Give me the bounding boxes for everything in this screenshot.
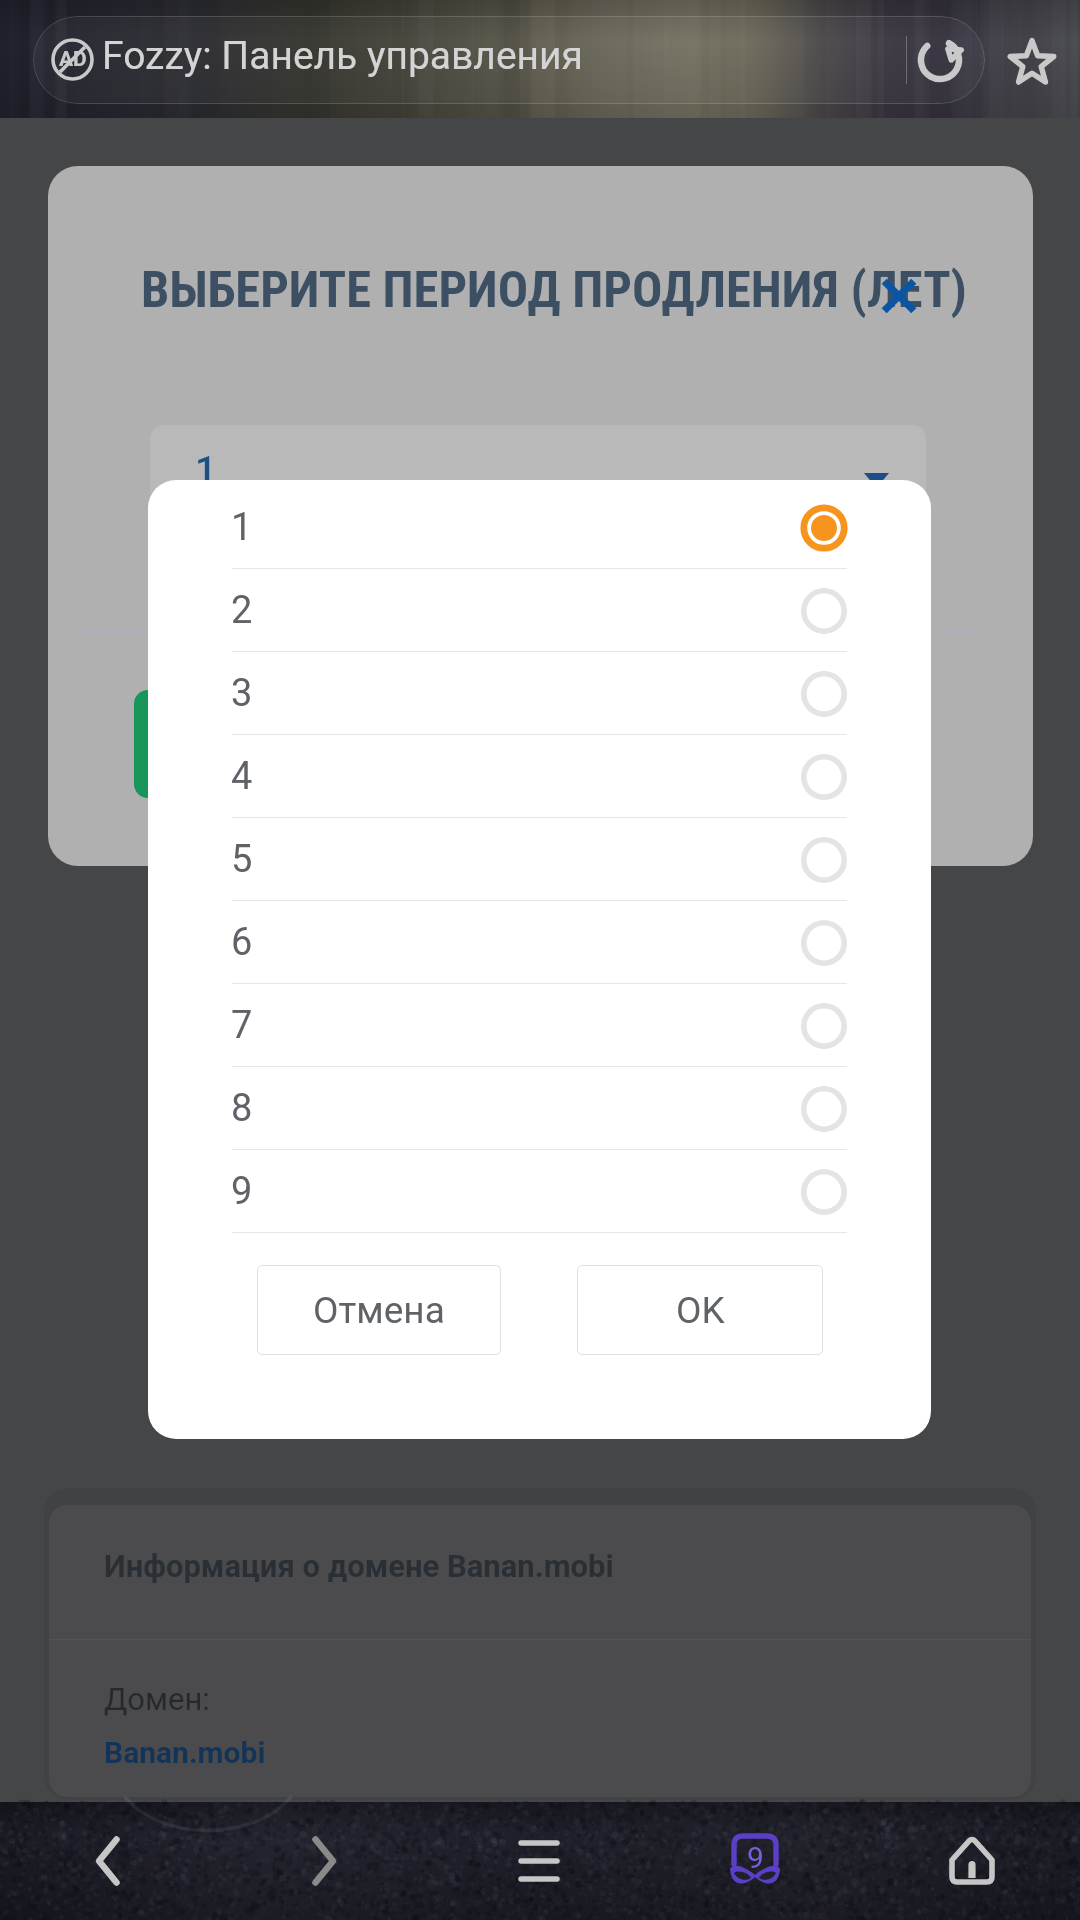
- button[interactable]: 8: [148, 1067, 931, 1150]
- button[interactable]: 6: [148, 901, 931, 984]
- button[interactable]: 1: [150, 425, 926, 535]
- button[interactable]: 4: [148, 735, 931, 818]
- staticText: Информация о домене Banan.mobi: [104, 1548, 614, 1584]
- staticText: OK: [676, 1289, 725, 1332]
- staticText: 7: [231, 1003, 253, 1048]
- button[interactable]: Menu: [485, 1802, 593, 1920]
- staticText: 5: [231, 837, 253, 882]
- button[interactable]: Tabs: [701, 1802, 809, 1920]
- button[interactable]: 7: [148, 984, 931, 1067]
- button[interactable]: 3: [148, 652, 931, 735]
- button[interactable]: 2: [148, 569, 931, 652]
- button[interactable]: Reload: [912, 32, 968, 88]
- staticText: 1: [195, 449, 217, 494]
- staticText: 9: [747, 1840, 764, 1875]
- staticText: AD: [59, 47, 87, 72]
- staticText: 2: [231, 588, 253, 633]
- button[interactable]: Forward: [270, 1802, 378, 1920]
- staticText: Fozzy: Панель управления: [102, 33, 583, 79]
- button[interactable]: Back: [54, 1802, 162, 1920]
- staticText: 4: [231, 754, 253, 799]
- staticText: 3: [231, 671, 253, 716]
- staticText: Banan.mobi: [104, 1735, 266, 1770]
- button[interactable]: [33, 16, 985, 104]
- button[interactable]: Ad blocked: [51, 38, 94, 81]
- staticText: 8: [231, 1086, 253, 1131]
- button[interactable]: [134, 690, 514, 798]
- button[interactable]: 9: [148, 1150, 931, 1233]
- staticText: 9: [231, 1169, 253, 1214]
- button[interactable]: Bookmark: [1006, 36, 1058, 88]
- staticText: Отмена: [313, 1289, 445, 1332]
- button[interactable]: 1: [148, 486, 931, 569]
- button[interactable]: Отмена: [257, 1265, 501, 1355]
- staticText: 6: [231, 920, 253, 965]
- staticText: ВЫБЕРИТЕ ПЕРИОД ПРОДЛЕНИЯ (ЛЕТ): [141, 260, 967, 319]
- button[interactable]: Close: [875, 272, 923, 320]
- staticText: 1: [231, 505, 253, 550]
- button[interactable]: 5: [148, 818, 931, 901]
- button[interactable]: OK: [577, 1265, 823, 1355]
- staticText: Домен:: [104, 1681, 210, 1717]
- button[interactable]: Home: [918, 1802, 1026, 1920]
